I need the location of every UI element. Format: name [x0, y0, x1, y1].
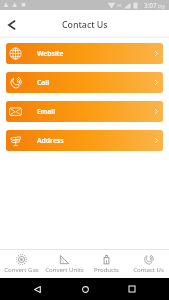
- staticText: Email: [37, 107, 56, 116]
- button[interactable]: Address: [6, 130, 163, 151]
- button[interactable]: Website: [6, 43, 163, 64]
- button[interactable]: Home: [74, 278, 96, 300]
- staticText: Convert Units: [45, 266, 84, 274]
- staticText: Contact Us: [62, 19, 108, 31]
- staticText: PM: [158, 4, 165, 10]
- button[interactable]: Convert Units: [43, 250, 85, 278]
- staticText: 3:07: [144, 1, 157, 10]
- button[interactable]: Call: [6, 72, 163, 93]
- button[interactable]: Products: [85, 250, 127, 278]
- staticText: Convert Gas: [4, 266, 39, 274]
- staticText: Address: [37, 136, 64, 145]
- button[interactable]: Email: [6, 101, 163, 122]
- button[interactable]: Recent apps: [121, 278, 143, 300]
- button[interactable]: Contact Us: [127, 250, 169, 278]
- staticText: Contact Us: [133, 266, 164, 274]
- button[interactable]: Back: [26, 278, 48, 300]
- button[interactable]: Back: [0, 10, 22, 38]
- staticText: Call: [37, 78, 50, 87]
- staticText: Products: [94, 266, 119, 274]
- staticText: Website: [37, 49, 64, 58]
- button[interactable]: Convert Gas: [0, 250, 43, 278]
